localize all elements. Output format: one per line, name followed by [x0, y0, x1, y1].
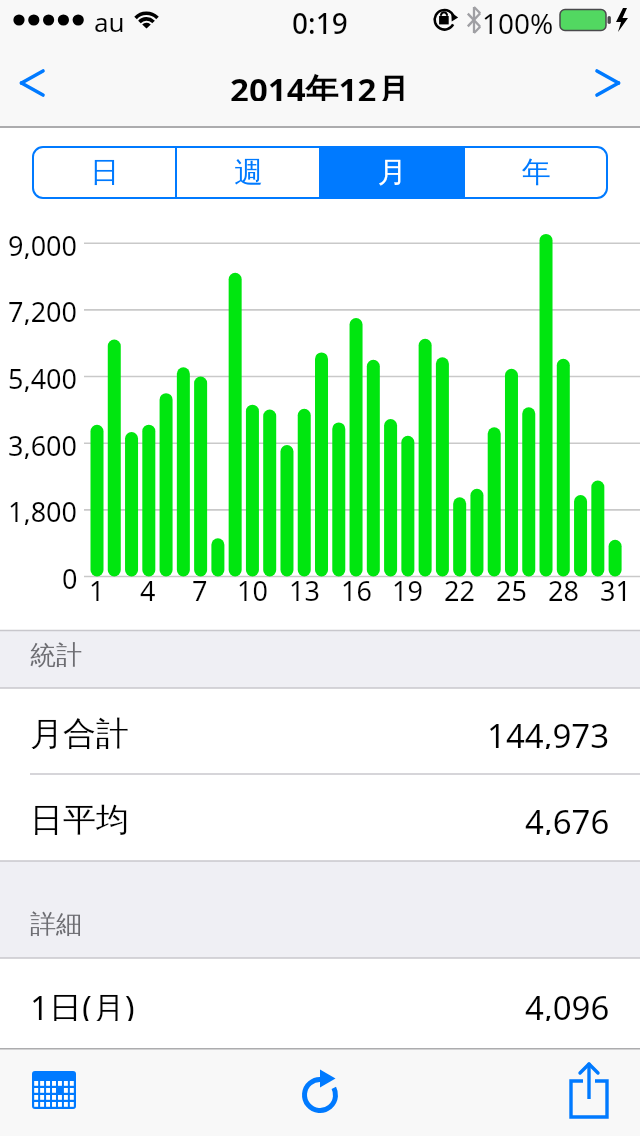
button[interactable]: 日 — [32, 146, 176, 199]
button[interactable]: 日平均 — [0, 774, 640, 861]
staticText: 16 — [341, 572, 372, 604]
staticText: 10 — [237, 572, 268, 604]
button[interactable]: 週 — [176, 146, 320, 199]
button[interactable] — [552, 1056, 624, 1128]
button[interactable] — [284, 1056, 356, 1128]
button[interactable]: 年 — [464, 146, 608, 199]
staticText: 1,800 — [8, 493, 78, 525]
staticText: 0:19 — [292, 4, 348, 36]
button[interactable]: 月 — [320, 146, 464, 199]
staticText: 9,000 — [8, 227, 78, 259]
staticText: 31 — [600, 572, 631, 604]
staticText: 5,400 — [8, 360, 78, 392]
button[interactable]: 1日(月) — [0, 958, 640, 1048]
staticText: 週 — [234, 154, 263, 191]
staticText: 2014年12月 — [230, 67, 410, 101]
staticText: 4,676 — [525, 799, 610, 835]
staticText: 日 — [90, 154, 119, 191]
staticText: 28 — [548, 572, 579, 604]
staticText: 3,600 — [8, 427, 78, 459]
staticText: au — [94, 4, 125, 36]
staticText: 詳細 — [30, 908, 82, 940]
button[interactable] — [580, 48, 640, 118]
staticText: 7 — [192, 572, 208, 604]
staticText: 1 — [89, 572, 105, 604]
staticText: 年 — [522, 154, 551, 191]
staticText: 13 — [289, 572, 320, 604]
staticText: 100% — [482, 4, 554, 36]
staticText: 22 — [444, 572, 475, 604]
button[interactable] — [16, 1056, 92, 1128]
staticText: 1日(月) — [30, 985, 135, 1021]
staticText: 25 — [496, 572, 527, 604]
staticText: 統計 — [30, 639, 82, 671]
staticText: 4,096 — [525, 985, 610, 1021]
staticText: 19 — [392, 572, 423, 604]
button[interactable]: 月合計 — [0, 688, 640, 774]
staticText: 4 — [140, 572, 156, 604]
staticText: 月 — [378, 154, 407, 191]
staticText: 7,200 — [8, 293, 78, 325]
staticText: 0 — [62, 560, 78, 592]
staticText: 144,973 — [487, 713, 610, 749]
staticText: 月合計 — [30, 713, 129, 749]
button[interactable] — [0, 48, 60, 118]
staticText: 日平均 — [30, 799, 129, 835]
